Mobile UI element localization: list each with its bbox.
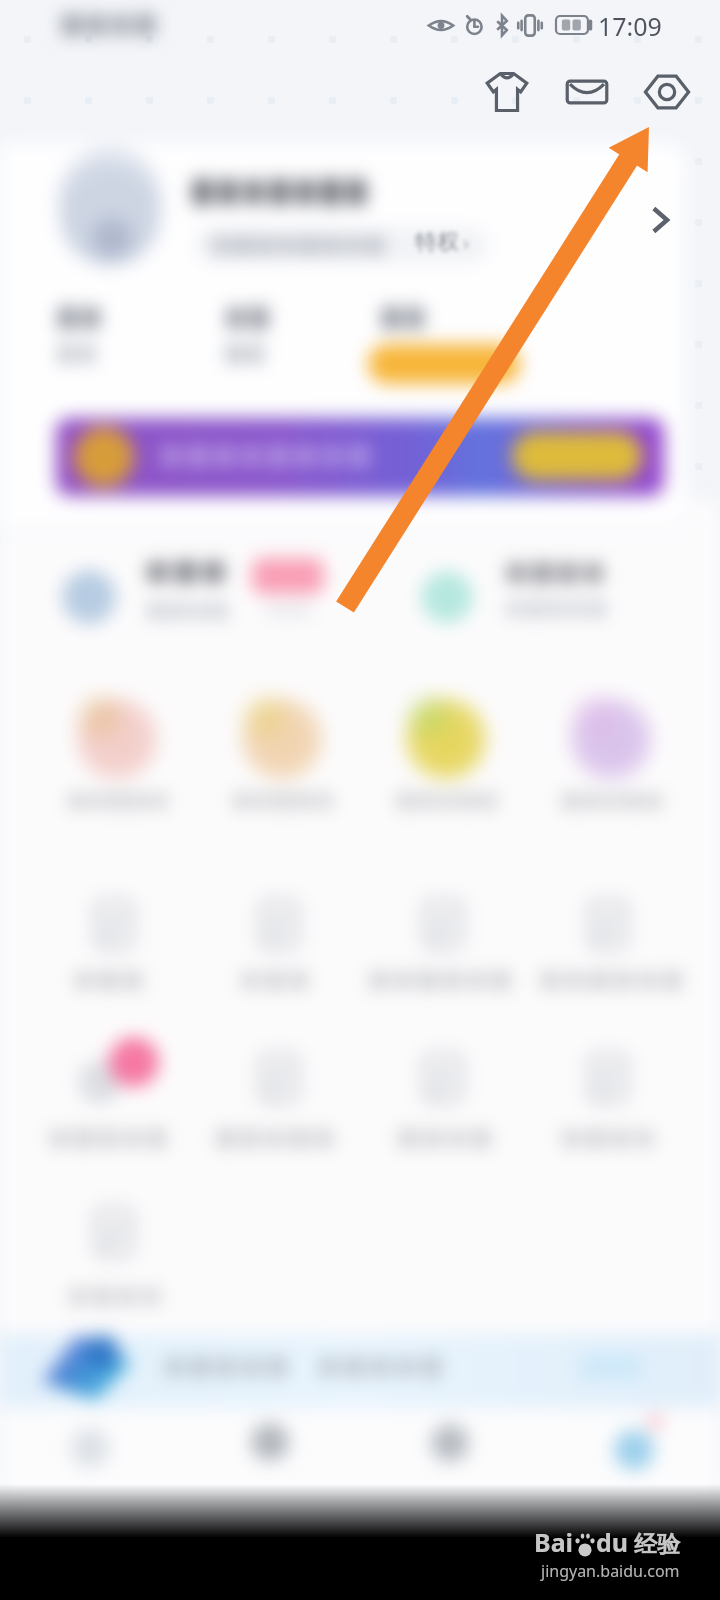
button[interactable]: Messages (547, 52, 627, 132)
staticText: 特权 (415, 228, 459, 256)
staticText: 经验 (634, 1530, 680, 1559)
button[interactable]: Open profile (634, 194, 686, 246)
staticText: Bai (534, 1525, 574, 1559)
staticText: du (596, 1525, 629, 1559)
staticText: jingyan.baidu.com (541, 1560, 680, 1582)
staticText: 17:09 (598, 9, 662, 43)
staticText: › (463, 229, 470, 256)
button[interactable]: 特权 (196, 228, 488, 262)
button[interactable]: Settings (627, 52, 707, 132)
button[interactable]: Themes (467, 52, 547, 132)
